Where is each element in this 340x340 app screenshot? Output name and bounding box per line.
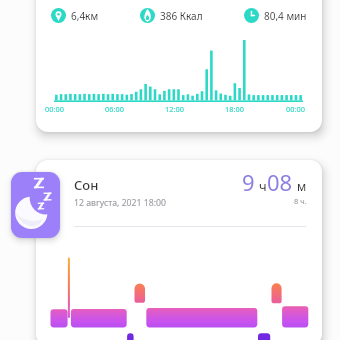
staticText: 12 августа, 2021 18:00 [74, 197, 166, 209]
button[interactable]: Сон [36, 160, 322, 340]
staticText: 6,4км [71, 9, 99, 23]
staticText: 386 Ккал [160, 9, 203, 23]
button[interactable]: 80,4 мин [244, 8, 307, 23]
staticText: 08 [267, 167, 293, 197]
button[interactable]: Сон [11, 172, 60, 238]
staticText: 00:00 [45, 104, 64, 114]
staticText: 00:00 [286, 104, 305, 114]
staticText: 12:00 [165, 104, 184, 114]
staticText: 18:00 [225, 104, 244, 114]
button[interactable]: 6,4км [51, 8, 99, 23]
staticText: Сон [74, 176, 99, 194]
staticText: 8 ч. [294, 196, 307, 206]
staticText: 06:00 [105, 104, 124, 114]
button[interactable]: 386 Ккал [140, 8, 203, 23]
staticText: ч [259, 177, 267, 195]
staticText: м [297, 178, 307, 194]
staticText: 80,4 мин [264, 9, 307, 23]
staticText: 9 [242, 167, 255, 197]
